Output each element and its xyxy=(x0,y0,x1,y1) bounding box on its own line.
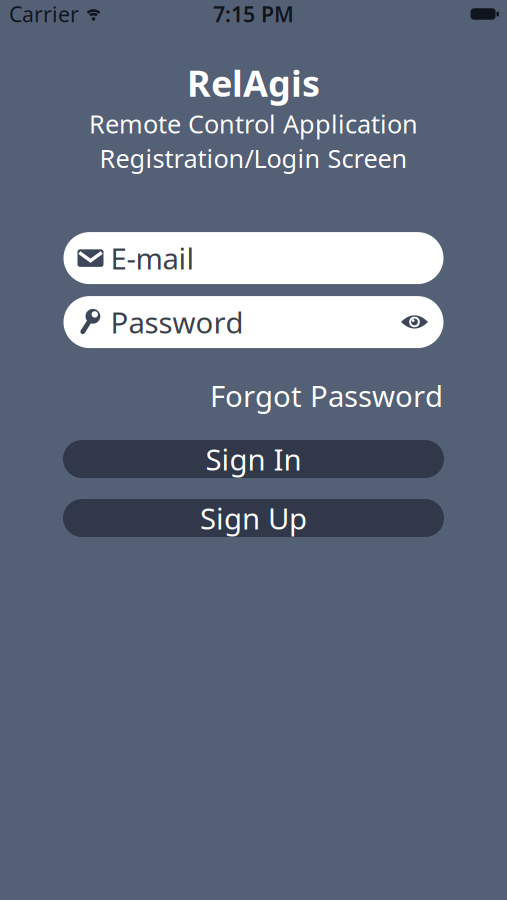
staticText: Forgot Password xyxy=(210,376,443,415)
staticText: Carrier xyxy=(9,0,79,28)
staticText: RelAgis xyxy=(187,59,320,107)
button[interactable]: E-mail xyxy=(63,232,443,284)
button[interactable]: Show password xyxy=(400,314,428,330)
staticText: 7:15 PM xyxy=(213,0,294,28)
staticText: Sign In xyxy=(205,440,301,479)
button[interactable]: Sign Up xyxy=(63,499,444,537)
button[interactable]: Forgot Password xyxy=(210,376,443,415)
button[interactable]: Sign In xyxy=(63,440,444,478)
staticText: Sign Up xyxy=(200,499,307,538)
staticText: E-mail xyxy=(110,239,194,278)
staticText: Registration/Login Screen xyxy=(99,141,407,175)
button[interactable]: Password xyxy=(63,296,443,348)
staticText: Password xyxy=(110,303,243,342)
staticText: Remote Control Application xyxy=(89,107,418,140)
